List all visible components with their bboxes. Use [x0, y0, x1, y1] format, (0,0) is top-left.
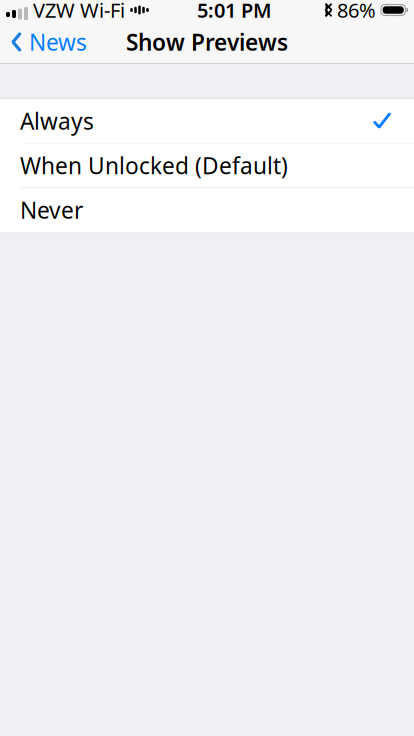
button[interactable]: Always [0, 99, 414, 143]
staticText: 5:01 PM [197, 0, 272, 23]
staticText: 86% [337, 0, 376, 23]
staticText: VZW Wi-Fi [33, 0, 125, 23]
button[interactable]: Never [0, 188, 414, 232]
button[interactable]: When Unlocked (Default) [0, 143, 414, 188]
staticText: News [29, 27, 87, 57]
staticText: When Unlocked (Default) [20, 150, 288, 180]
staticText: Show Previews [126, 27, 288, 57]
staticText: Never [20, 195, 83, 225]
button[interactable]: News [0, 20, 97, 64]
staticText: Always [20, 106, 94, 136]
